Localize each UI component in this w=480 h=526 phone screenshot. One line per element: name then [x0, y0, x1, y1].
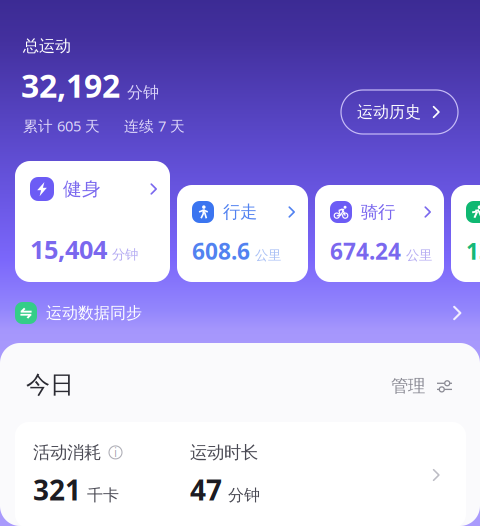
staticText: 运动时长 [190, 442, 258, 463]
staticText: 千卡 [87, 485, 119, 505]
button[interactable]: 管理 [391, 375, 480, 397]
staticText: i [114, 444, 117, 460]
staticText: 健身 [63, 177, 101, 200]
staticText: 32,192 [21, 64, 120, 106]
button[interactable]: 健身 [15, 161, 170, 282]
staticText: 674.24 [330, 236, 401, 266]
staticText: 分钟 [112, 246, 138, 263]
staticText: 管理 [391, 375, 425, 397]
button[interactable]: 骑行 [315, 185, 444, 282]
staticText: 分钟 [127, 82, 159, 102]
staticText: 累计 605 天 [23, 116, 100, 135]
staticText: 15,404 [30, 232, 107, 266]
staticText: 132.5 [466, 236, 480, 266]
staticText: 运动历史 [357, 102, 421, 122]
staticText: 今日 [26, 370, 74, 399]
staticText: 47 [190, 471, 222, 508]
button[interactable]: 活动消耗 [15, 422, 466, 526]
staticText: 骑行 [361, 201, 395, 223]
staticText: 行走 [223, 201, 257, 223]
staticText: 321 [33, 471, 81, 508]
button[interactable]: 行走 [177, 185, 308, 282]
staticText: 总运动 [23, 36, 71, 56]
button[interactable]: 运动历史 [341, 90, 458, 134]
staticText: 运动数据同步 [46, 303, 142, 323]
staticText: 608.6 [192, 236, 250, 266]
staticText: 分钟 [228, 485, 260, 505]
staticText: 公里 [255, 247, 281, 263]
staticText: 公里 [406, 247, 432, 263]
button[interactable]: 运动数据同步 [0, 294, 480, 332]
button[interactable]: 跑步 [451, 185, 480, 282]
staticText: 活动消耗 [33, 442, 101, 463]
staticText: 连续 7 天 [124, 116, 185, 135]
